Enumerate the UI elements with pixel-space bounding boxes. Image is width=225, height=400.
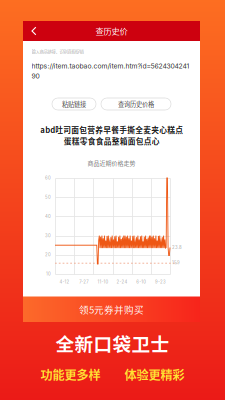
staticText: 50 bbox=[45, 195, 51, 200]
staticText: 7-27 bbox=[79, 279, 88, 285]
staticText: 10 bbox=[46, 271, 51, 277]
button[interactable]: 查询历史价格 bbox=[101, 98, 171, 110]
staticText: 11-10 bbox=[97, 279, 108, 285]
staticText: 15.9 bbox=[172, 260, 180, 265]
button[interactable]: 粘贴链接 bbox=[52, 98, 96, 110]
staticText: 粘贴链接 bbox=[62, 99, 86, 109]
staticText: 输入商品链接，识别真假促销 bbox=[31, 48, 83, 55]
staticText: 90 bbox=[31, 72, 39, 80]
staticText: 23.8 bbox=[172, 245, 182, 250]
staticText: 30 bbox=[45, 233, 51, 238]
staticText: 9-23 bbox=[155, 279, 166, 285]
staticText: 20 bbox=[45, 252, 51, 257]
staticText: 查历史价 bbox=[95, 25, 127, 37]
staticText: 功能更多样 体验更精彩 bbox=[40, 366, 184, 383]
staticText: 60 bbox=[45, 175, 51, 181]
button[interactable]: 领5元券并购买 bbox=[23, 296, 200, 322]
staticText: 查询历史价格 bbox=[118, 99, 154, 109]
staticText: 4-12 bbox=[60, 279, 70, 285]
staticText: https://item.taobao.com/item.htm?id=5624… bbox=[31, 62, 189, 70]
staticText: 6-10 bbox=[136, 279, 146, 285]
staticText: 全新口袋卫士 bbox=[55, 329, 169, 356]
staticText: 2-24 bbox=[117, 279, 128, 285]
staticText: 40 bbox=[45, 214, 51, 219]
staticText: abd吐司面包营养早餐手撕全麦夹心糕点蛋糕零食食品整箱面包点心 bbox=[40, 124, 183, 146]
staticText: 商品近期价格走势 bbox=[87, 159, 135, 167]
staticText: 领5元券并购买 bbox=[79, 302, 144, 316]
button[interactable]: Back bbox=[27, 21, 41, 41]
